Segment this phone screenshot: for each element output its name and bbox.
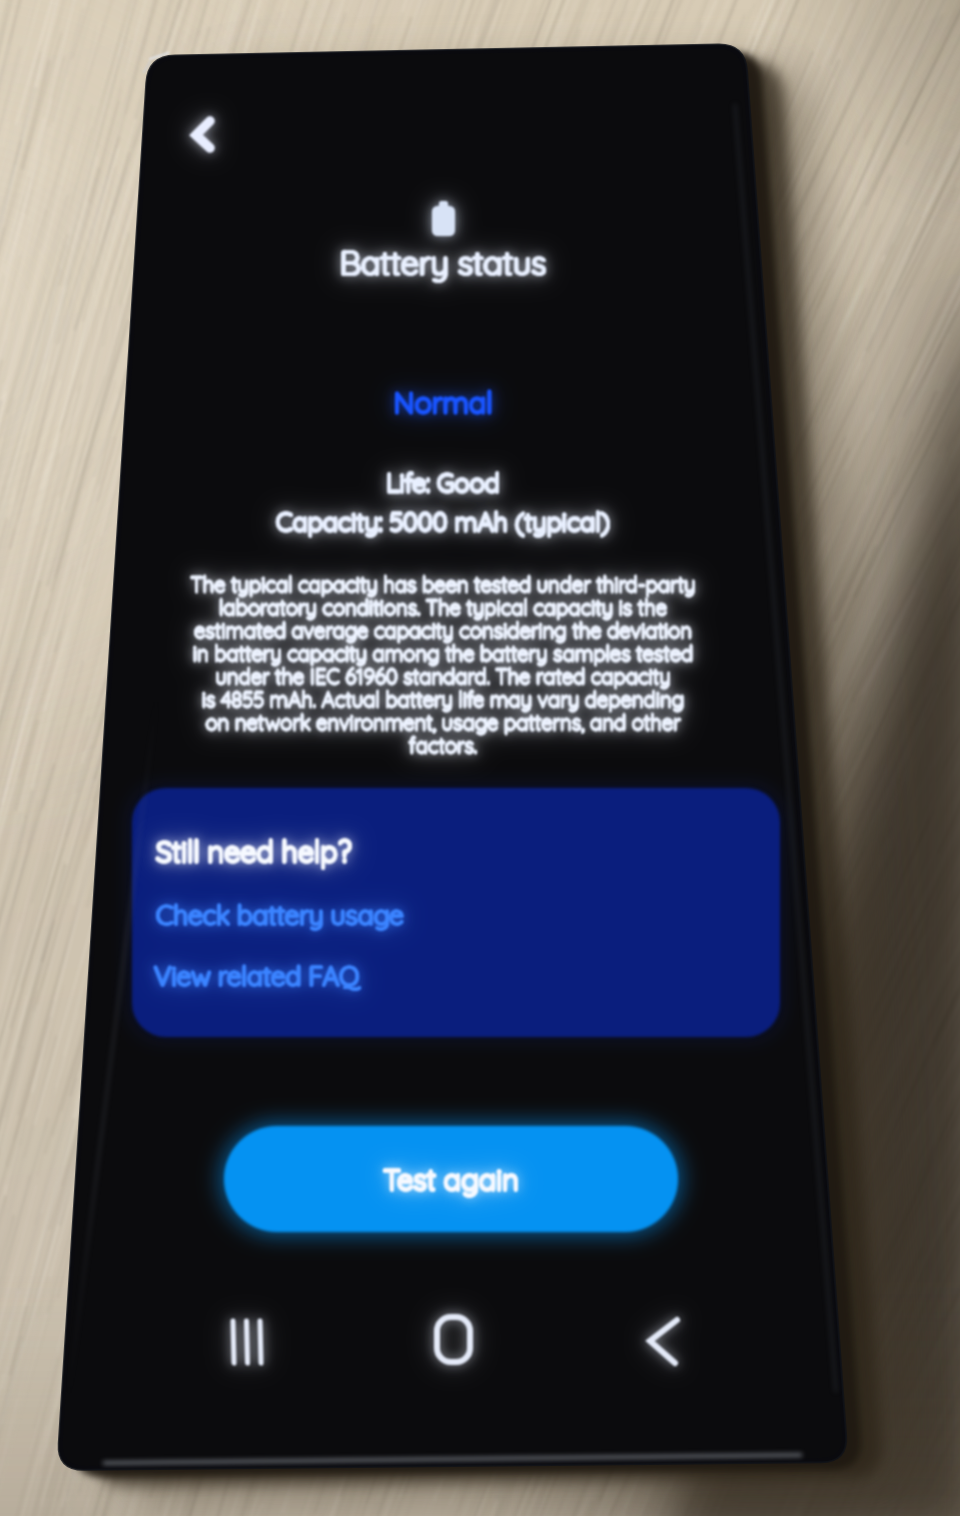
button[interactable]: Recent apps [196,1298,296,1386]
button[interactable]: Navigate up [172,100,248,172]
button[interactable]: Back [614,1298,714,1386]
button[interactable]: View related FAQ [140,946,420,1006]
button[interactable]: Test again [224,1126,678,1232]
button[interactable]: Home [404,1294,504,1386]
button[interactable]: Check battery usage [140,884,450,944]
